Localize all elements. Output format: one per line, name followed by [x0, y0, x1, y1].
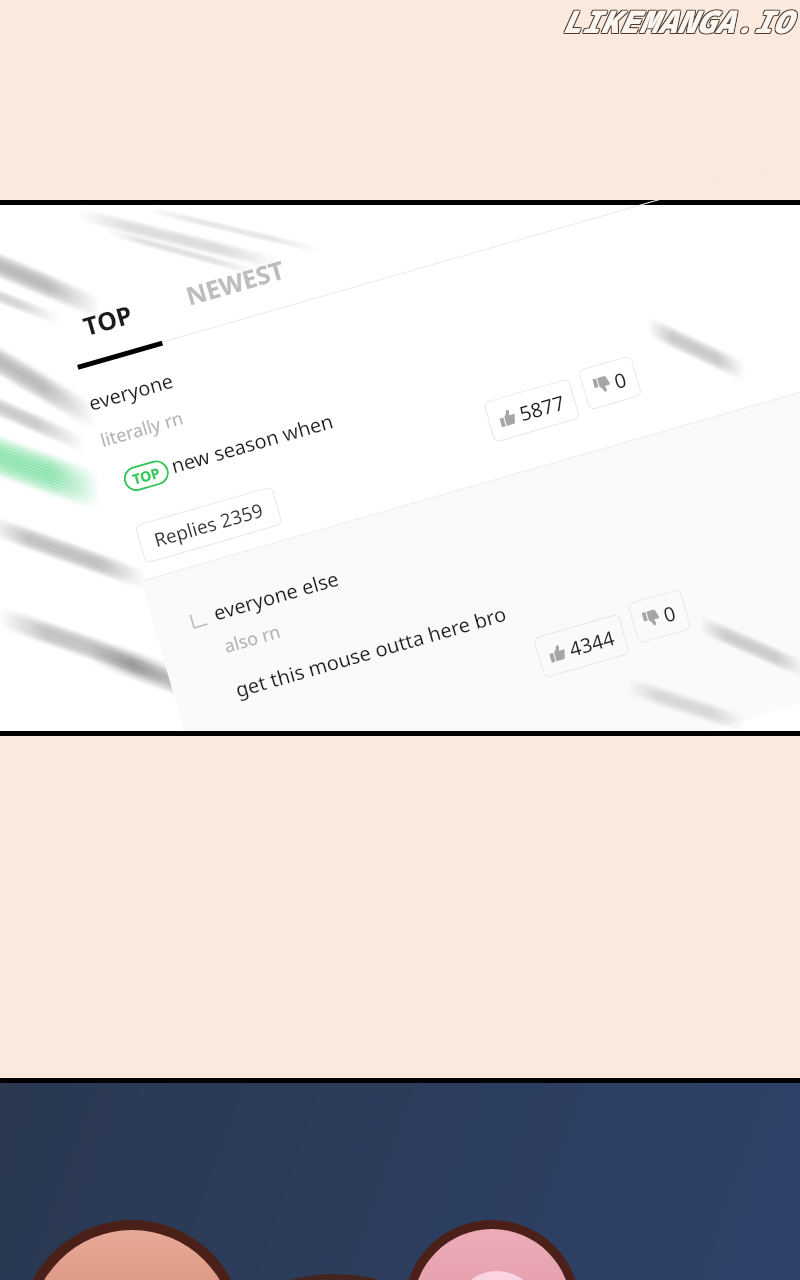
staticText: 5877 — [516, 389, 568, 427]
staticText: Replies 2359 — [151, 497, 267, 553]
button[interactable]: 0 — [627, 588, 692, 644]
staticText: 4344 — [566, 624, 618, 663]
staticText: LIKEMANGA.IO — [561, 0, 791, 42]
button[interactable] — [171, 230, 317, 331]
button[interactable]: 0 — [578, 355, 642, 410]
staticText: new season when — [168, 407, 337, 479]
button[interactable]: Replies 2359 — [134, 486, 283, 564]
staticText: 0 — [660, 599, 679, 628]
staticText: literally rn — [97, 405, 186, 453]
staticText: everyone else — [210, 565, 343, 626]
staticText: LIKEMANGA.IO — [561, 1, 791, 43]
staticText: LIKEMANGA.IO — [562, 0, 792, 42]
staticText: TOP — [79, 297, 136, 343]
button[interactable]: 4344 — [533, 613, 630, 678]
staticText: everyone — [85, 367, 177, 417]
staticText: LIKEMANGA.IO — [561, 0, 791, 41]
button[interactable]: TOP — [121, 457, 172, 494]
button[interactable] — [65, 278, 171, 368]
staticText: 0 — [611, 366, 630, 395]
staticText: LIKEMANGA.IO — [562, 0, 792, 41]
button[interactable]: 5877 — [483, 378, 580, 443]
staticText: LIKEMANGA.IO — [563, 0, 793, 42]
staticText: LIKEMANGA.IO — [562, 1, 792, 43]
staticText: LIKEMANGA.IO — [563, 0, 793, 41]
staticText: get this mouse outta here bro — [232, 600, 510, 703]
staticText: LIKEMANGA.IO — [563, 1, 793, 43]
staticText: TOP — [130, 463, 162, 489]
staticText: NEWEST — [182, 252, 288, 312]
staticText: also rn — [221, 619, 284, 659]
